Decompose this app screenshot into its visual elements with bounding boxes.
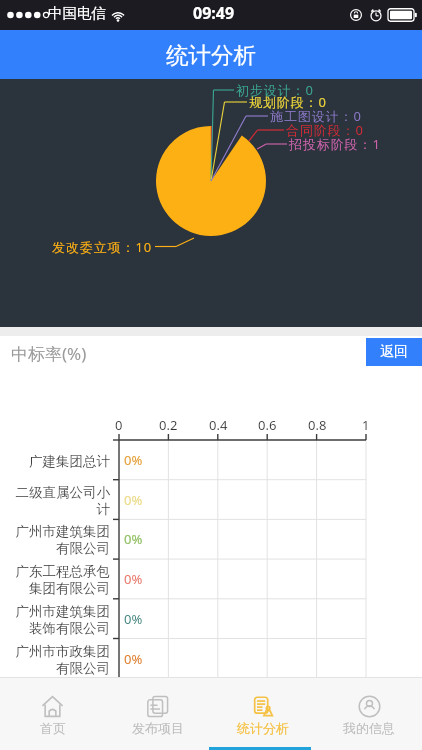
staticText: 规划阶段：0 [249,93,327,111]
staticText: 施工图设计：0 [270,107,362,125]
button[interactable]: 发布项目 [105,678,210,750]
staticText: 09:49 [193,2,235,24]
staticText: 统计分析 [166,41,256,69]
staticText: 中国电信 [48,4,106,22]
staticText: 0% [124,570,143,588]
staticText: 0.2 [159,416,178,434]
staticText: 广东工程总承包 [15,563,110,580]
staticText: 0% [124,530,143,548]
staticText: 广建集团总计 [29,453,110,470]
staticText: 0% [124,610,143,628]
staticText: 0% [124,451,143,469]
button[interactable]: 统计分析 [210,678,316,750]
staticText: 首页 [40,720,66,736]
staticText: 中标率(%) [11,342,87,365]
staticText: 1 [362,416,370,434]
staticText: 0.4 [209,416,228,434]
button[interactable]: 返回 [366,338,422,366]
staticText: 0 [115,416,123,434]
staticText: 返回 [380,343,408,361]
staticText: 0% [124,650,143,668]
staticText: 0% [124,491,143,509]
staticText: 招投标阶段：1 [289,135,381,153]
staticText: 我的信息 [343,720,395,736]
staticText: 装饰有限公司 [29,620,110,637]
staticText: 初步设计：0 [236,81,314,99]
staticText: 发布项目 [132,720,184,736]
staticText: 有限公司 [56,540,110,557]
staticText: 0.6 [258,416,277,434]
staticText: 0.8 [308,416,327,434]
button[interactable]: 我的信息 [316,678,422,750]
staticText: 广州市建筑集团 [15,603,110,620]
staticText: 广州市建筑集团 [15,523,110,540]
staticText: 计 [96,501,110,518]
staticText: 合同阶段：0 [286,121,364,139]
staticText: 有限公司 [56,660,110,677]
button[interactable]: 首页 [0,678,105,750]
staticText: 集团有限公司 [29,580,110,597]
staticText: 发改委立项：10 [52,238,153,256]
staticText: 统计分析 [237,720,289,736]
staticText: 广州市市政集团 [15,643,110,660]
staticText: 二级直属公司小 [15,484,110,501]
